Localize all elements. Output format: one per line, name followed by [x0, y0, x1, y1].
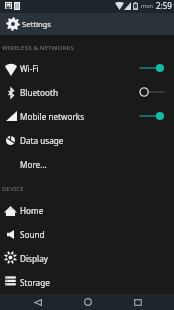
button[interactable]: Sound [0, 222, 174, 246]
button[interactable]: Data usage [0, 128, 174, 152]
staticText: Home [20, 205, 44, 216]
staticText: Wi-Fi [20, 63, 39, 74]
button[interactable]: Storage [0, 270, 174, 294]
button[interactable]: Back [19, 294, 56, 310]
staticText: Storage [20, 277, 50, 288]
staticText: Settings [22, 19, 51, 29]
staticText: WIRELESS & NETWORKS [2, 44, 74, 52]
staticText: Mobile networks [20, 111, 85, 122]
staticText: More... [20, 159, 47, 170]
button[interactable]: Wi-Fi [0, 56, 174, 80]
button[interactable]: Recent apps [119, 294, 156, 310]
button[interactable]: Settings icon [6, 17, 20, 31]
button[interactable]: Home [0, 198, 174, 222]
button[interactable]: More... [0, 152, 174, 176]
staticText: Bluetooth [20, 87, 58, 98]
button[interactable]: Home [69, 294, 106, 310]
button[interactable]: Turn off [139, 109, 165, 123]
button[interactable]: Turn on [139, 85, 165, 99]
staticText: Display [20, 253, 48, 264]
button[interactable]: Mobile networks [0, 104, 174, 128]
button[interactable]: Bluetooth [0, 80, 174, 104]
button[interactable]: Display [0, 246, 174, 270]
staticText: Data usage [20, 135, 64, 146]
staticText: 2:59 [156, 0, 172, 11]
button[interactable]: Turn off [139, 61, 165, 75]
staticText: Sound [20, 229, 45, 240]
staticText: mon [141, 2, 154, 10]
staticText: DEVICE [2, 185, 24, 193]
